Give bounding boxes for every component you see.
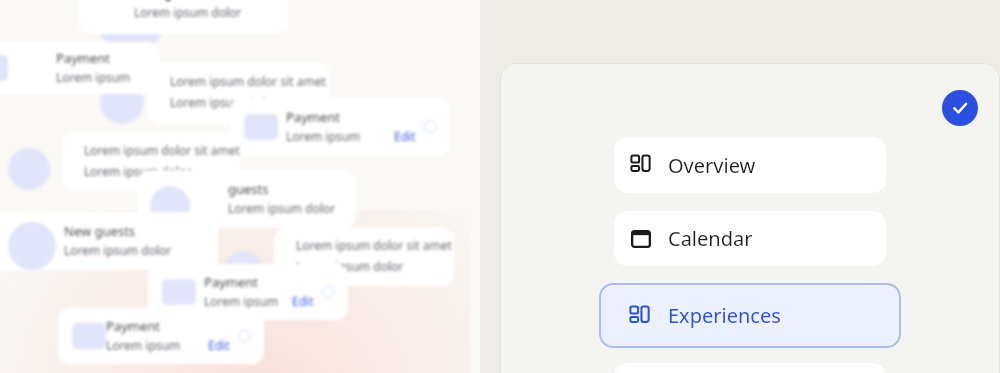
staticText: New guests [64,222,136,240]
staticText: Lorem ipsum [56,69,131,85]
button[interactable]: Calendar [614,211,886,266]
staticText: Lorem ipsum dolor sit amet [170,73,326,89]
staticText: Lorem ipsum [106,337,181,353]
staticText: Payment [106,317,161,335]
staticText: Overview [668,152,756,179]
staticText: Payment [286,108,341,126]
staticText: Payment [204,273,259,291]
staticText: Experiences [668,302,781,329]
staticText: Lorem ipsum [286,128,361,144]
staticText: Lorem ipsum dolor sit amet [84,142,240,158]
staticText: Lorem ipsum [204,293,279,309]
staticText: New guests [134,0,206,2]
staticText: Lorem ipsum dolor [296,258,404,274]
staticText: Edit [208,337,230,353]
staticText: Lorem ipsum dolor [134,4,242,20]
staticText: Edit [394,128,416,144]
button[interactable]: Overview [614,137,886,193]
staticText: Lorem ipsum dolor [84,163,192,179]
staticText: Edit [292,293,314,309]
staticText: guests [228,180,269,198]
staticText: Calendar [668,225,753,252]
staticText: Lorem ipsum dolor sit amet [296,237,452,253]
staticText: Lorem ipsum dolor [170,94,278,110]
button[interactable]: Confirmed [942,90,978,126]
staticText: Lorem ipsum dolor [64,242,172,258]
staticText: Payment [56,49,111,67]
button[interactable]: Experiences [599,283,901,348]
staticText: Lorem ipsum dolor [228,200,336,216]
